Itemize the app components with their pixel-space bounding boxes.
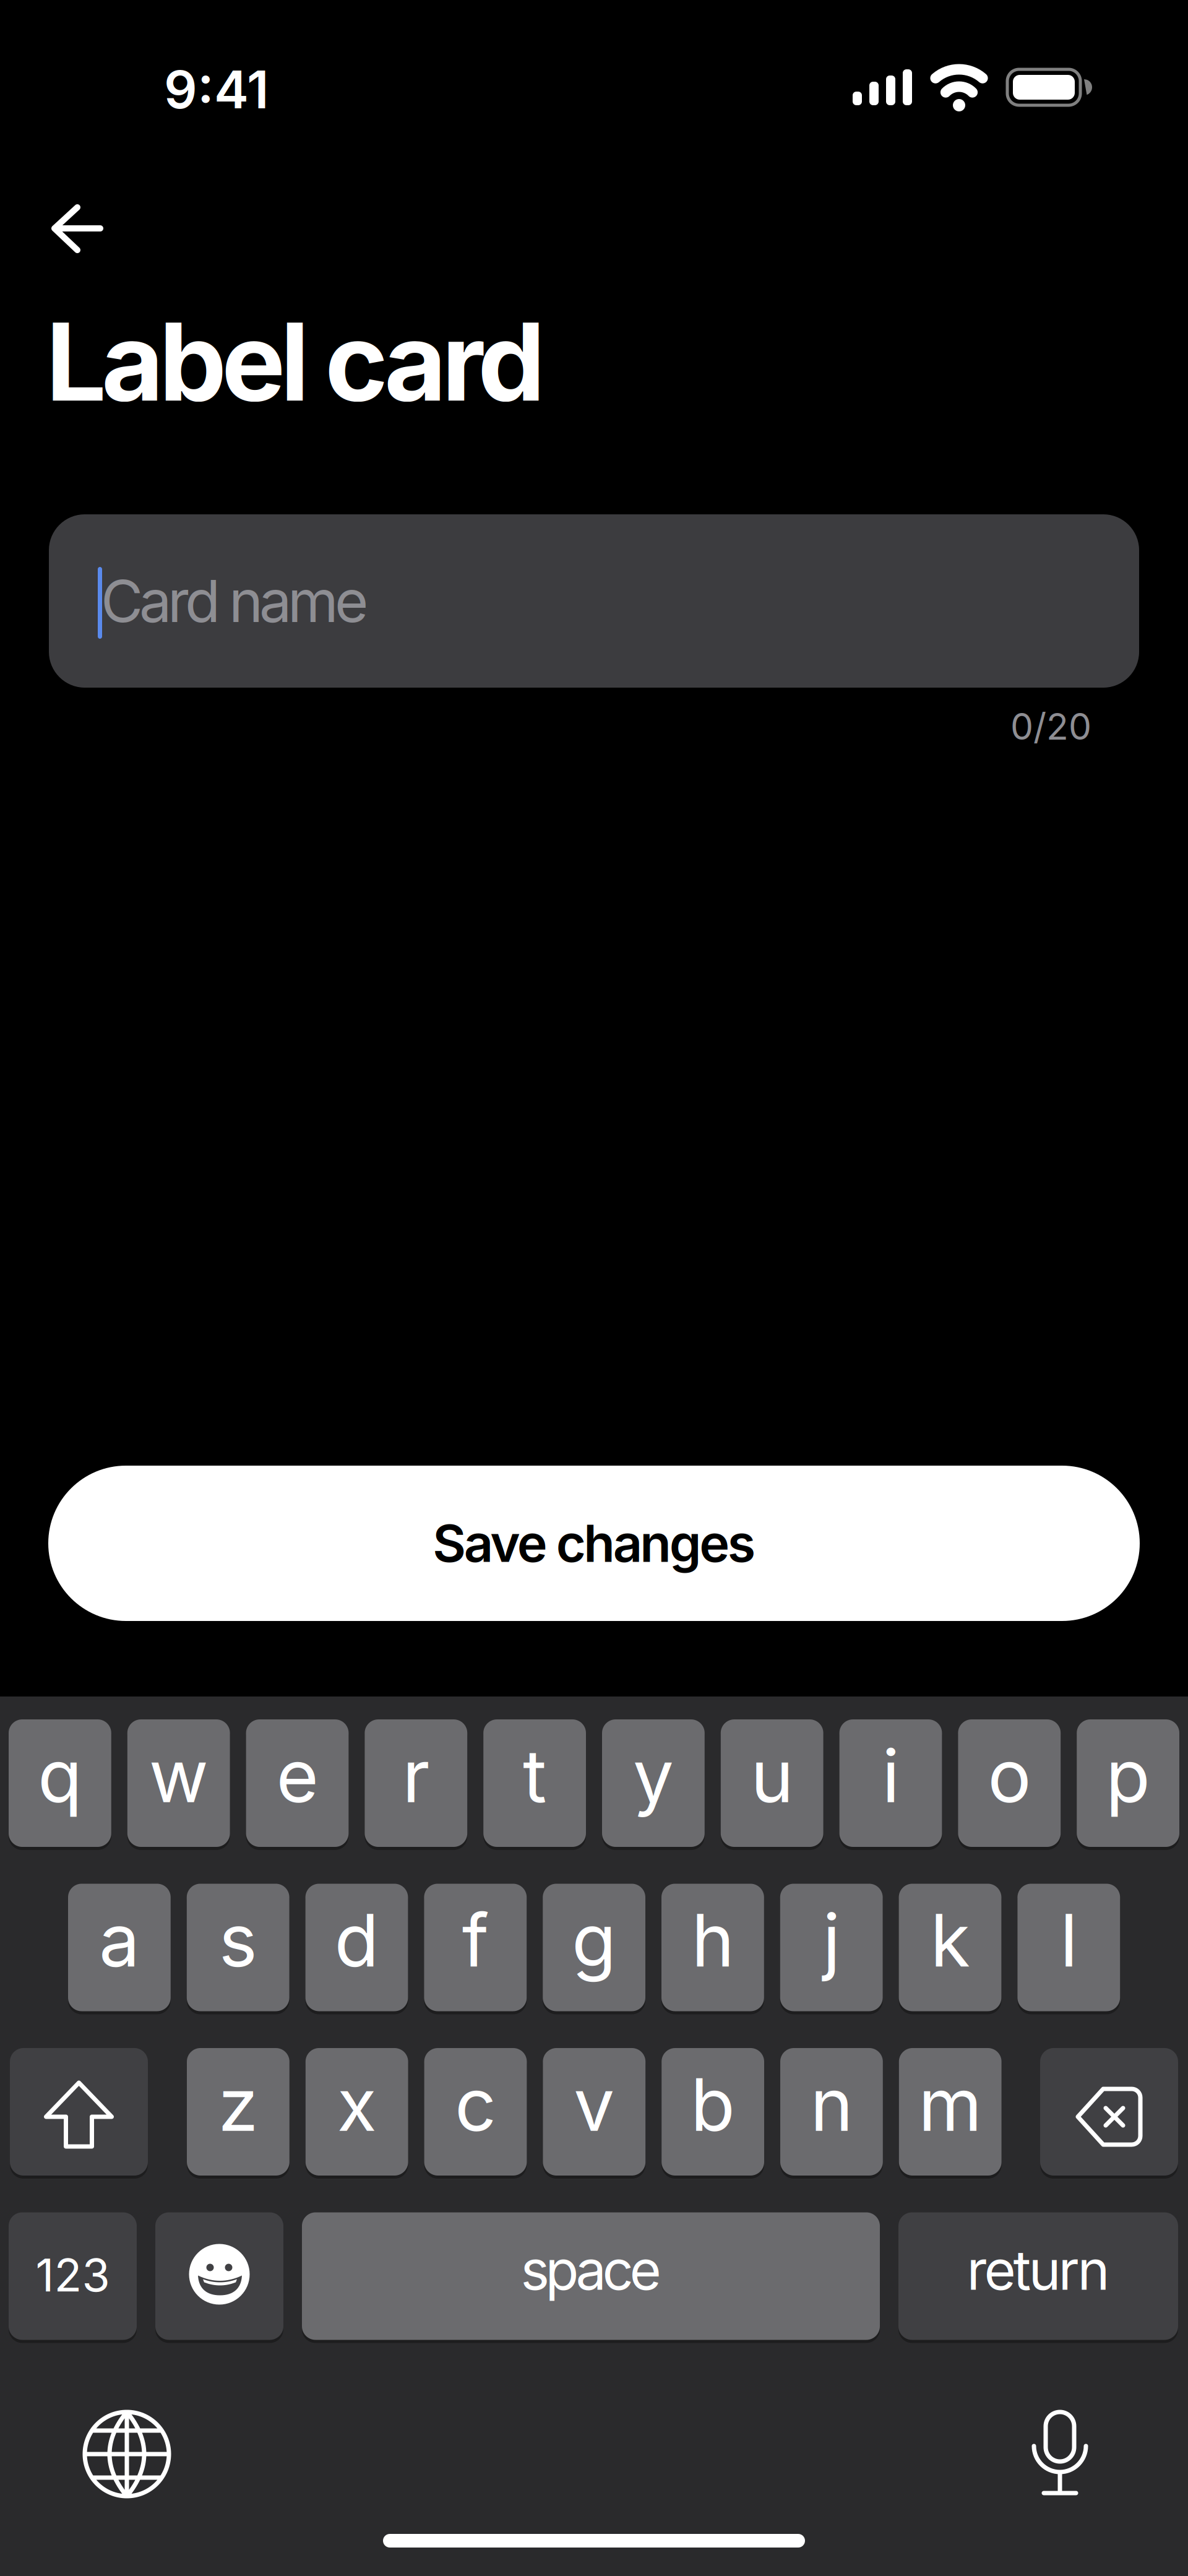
staticText: q <box>38 1733 82 1819</box>
button[interactable]: n <box>780 2048 883 2176</box>
button[interactable]: 123 <box>9 2212 137 2340</box>
button[interactable]: s <box>187 1884 289 2011</box>
staticText: 123 <box>36 2248 110 2302</box>
staticText: v <box>574 2062 615 2147</box>
staticText: h <box>691 1897 734 1983</box>
button[interactable]: x <box>306 2048 408 2176</box>
button[interactable]: o <box>958 1719 1061 1847</box>
staticText: g <box>572 1897 616 1983</box>
staticText: Card name <box>101 567 368 635</box>
button[interactable]: f <box>424 1884 527 2011</box>
button[interactable]: Emoji <box>155 2212 283 2340</box>
button[interactable]: l <box>1017 1884 1120 2011</box>
button[interactable]: r <box>365 1719 467 1847</box>
button[interactable]: v <box>543 2048 645 2176</box>
staticText: p <box>1106 1733 1150 1819</box>
staticText: r <box>402 1733 430 1819</box>
staticText: b <box>691 2062 735 2147</box>
button[interactable]: Back <box>24 207 110 256</box>
button[interactable]: h <box>661 1884 764 2011</box>
staticText: z <box>218 2062 258 2147</box>
staticText: d <box>334 1897 379 1983</box>
staticText: u <box>751 1733 793 1819</box>
button[interactable]: g <box>543 1884 645 2011</box>
button[interactable]: b <box>662 2048 764 2176</box>
staticText: 0/20 <box>1010 705 1091 748</box>
staticText: j <box>823 1897 840 1983</box>
staticText: n <box>810 2062 853 2147</box>
staticText: m <box>918 2062 982 2147</box>
staticText: return <box>967 2238 1110 2302</box>
staticText: a <box>99 1897 140 1983</box>
button[interactable]: z <box>187 2048 289 2176</box>
staticText: y <box>633 1733 674 1819</box>
staticText: t <box>523 1733 546 1819</box>
button[interactable]: d <box>305 1884 408 2011</box>
button[interactable]: y <box>602 1719 705 1847</box>
button[interactable]: Shift <box>10 2048 148 2176</box>
staticText: x <box>337 2062 377 2147</box>
button[interactable]: p <box>1077 1719 1179 1847</box>
staticText: e <box>276 1733 318 1819</box>
staticText: Save changes <box>433 1513 755 1573</box>
staticText: c <box>455 2062 496 2147</box>
button[interactable]: k <box>899 1884 1001 2011</box>
staticText: f <box>462 1897 489 1983</box>
button[interactable]: Next keyboard <box>59 2390 195 2518</box>
button[interactable]: q <box>9 1719 111 1847</box>
button[interactable]: w <box>127 1719 230 1847</box>
button[interactable]: e <box>246 1719 349 1847</box>
staticText: i <box>882 1733 899 1819</box>
button[interactable]: Dictate <box>1010 2390 1109 2518</box>
staticText: k <box>930 1897 970 1983</box>
button[interactable]: u <box>721 1719 823 1847</box>
staticText: Label card <box>46 298 545 425</box>
staticText: 9:41 <box>164 59 269 120</box>
button[interactable]: a <box>68 1884 171 2011</box>
button[interactable]: i <box>839 1719 942 1847</box>
button[interactable]: t <box>483 1719 586 1847</box>
staticText: s <box>219 1897 257 1983</box>
button[interactable]: m <box>899 2048 1002 2176</box>
button[interactable]: Card name <box>49 514 1139 688</box>
staticText: l <box>1060 1897 1077 1983</box>
button[interactable]: c <box>424 2048 527 2176</box>
button[interactable]: j <box>780 1884 883 2011</box>
button[interactable]: Delete <box>1040 2048 1178 2176</box>
button[interactable]: return <box>898 2212 1178 2340</box>
staticText: o <box>988 1733 1031 1819</box>
staticText: space <box>521 2238 661 2302</box>
button[interactable]: space <box>302 2212 880 2340</box>
staticText: w <box>149 1733 208 1819</box>
button[interactable]: Save changes <box>48 1466 1140 1621</box>
